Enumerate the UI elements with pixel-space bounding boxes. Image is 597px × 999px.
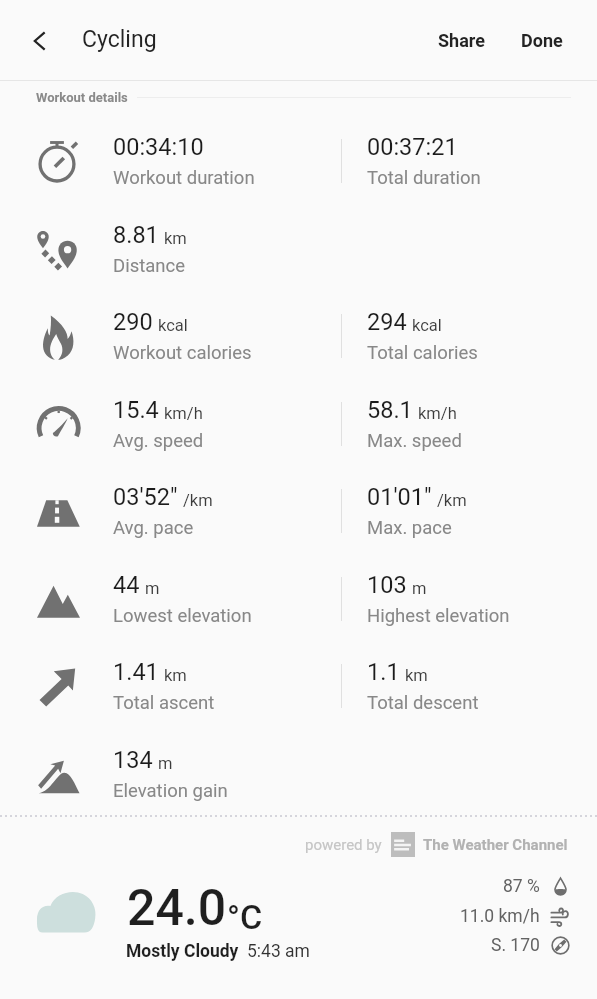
staticText: km — [405, 666, 428, 685]
staticText: Share — [438, 30, 485, 51]
staticText: Avg. pace — [113, 517, 194, 539]
staticText: 15.4 — [113, 396, 159, 424]
staticText: kcal — [412, 316, 442, 335]
staticText: /km — [437, 491, 467, 510]
staticText: 58.1 — [367, 396, 413, 424]
staticText: m — [158, 754, 173, 773]
staticText: Total duration — [367, 167, 481, 189]
staticText: Workout calories — [113, 342, 252, 364]
staticText: 8.81 — [113, 221, 159, 249]
staticText: Max. speed — [367, 430, 462, 452]
button[interactable]: 15.4 — [0, 380, 597, 468]
staticText: 294 — [367, 308, 407, 336]
staticText: 03'52" — [113, 483, 178, 511]
staticText: Total ascent — [113, 692, 215, 714]
staticText: 11.0 km/h — [460, 906, 540, 927]
staticText: 44 — [113, 571, 140, 599]
staticText: kcal — [158, 316, 188, 335]
staticText: 103 — [367, 571, 407, 599]
staticText: 5:43 am — [247, 941, 310, 962]
staticText: 87 % — [503, 876, 540, 897]
button[interactable]: 290 — [0, 292, 597, 380]
staticText: km/h — [164, 404, 203, 423]
staticText: km/h — [418, 404, 457, 423]
staticText: 134 — [113, 746, 153, 774]
staticText: Max. pace — [367, 517, 452, 539]
staticText: Total descent — [367, 692, 479, 714]
staticText: Total calories — [367, 342, 478, 364]
staticText: °C — [227, 897, 263, 937]
button[interactable]: 44 — [0, 555, 597, 643]
staticText: km — [164, 229, 187, 248]
button[interactable]: 00:34:10 — [0, 117, 597, 205]
staticText: m — [145, 579, 160, 598]
staticText: Highest elevation — [367, 605, 510, 627]
staticText: 1.1 — [367, 658, 400, 686]
staticText: m — [412, 579, 427, 598]
staticText: Elevation gain — [113, 780, 228, 802]
staticText: km — [164, 666, 187, 685]
button[interactable]: 134 — [0, 730, 597, 818]
staticText: Workout details — [36, 90, 128, 105]
staticText: /km — [183, 491, 213, 510]
button[interactable]: Share — [420, 18, 503, 63]
button[interactable]: 8.81 — [0, 205, 597, 293]
staticText: 1.41 — [113, 658, 159, 686]
button[interactable]: Back — [15, 16, 65, 66]
staticText: Avg. speed — [113, 430, 204, 452]
staticText: Lowest elevation — [113, 605, 252, 627]
staticText: 24.0 — [127, 879, 227, 938]
staticText: Workout duration — [113, 167, 255, 189]
staticText: 290 — [113, 308, 153, 336]
button[interactable]: 03'52" — [0, 467, 597, 555]
button[interactable]: Done — [503, 18, 581, 63]
button[interactable]: 1.41 — [0, 642, 597, 730]
staticText: Cycling — [82, 26, 157, 53]
staticText: Distance — [113, 255, 186, 277]
staticText: The Weather Channel — [423, 836, 568, 854]
staticText: S. 170 — [491, 935, 540, 956]
staticText: powered by — [305, 836, 382, 854]
staticText: 00:34:10 — [113, 133, 204, 161]
staticText: Done — [521, 30, 563, 51]
staticText: 00:37:21 — [367, 133, 458, 161]
staticText: Mostly Cloudy — [126, 941, 239, 962]
staticText: 01'01" — [367, 483, 432, 511]
